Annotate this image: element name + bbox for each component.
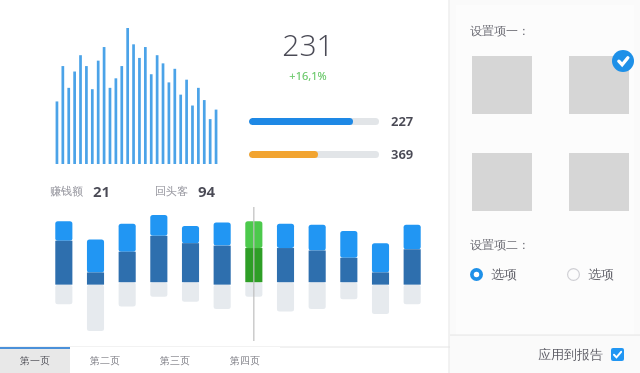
- button[interactable]: 选项: [567, 266, 614, 282]
- staticText: 回头客: [155, 184, 188, 198]
- button[interactable]: 选项: [470, 266, 517, 282]
- staticText: 第三页: [160, 354, 190, 367]
- staticText: 231: [262, 24, 354, 65]
- staticText: 第一页: [20, 354, 50, 367]
- button[interactable]: 第二页: [70, 347, 140, 373]
- staticText: 第二页: [90, 354, 120, 367]
- staticText: 选项: [588, 266, 614, 282]
- button[interactable]: 第一页: [0, 347, 70, 373]
- button[interactable]: 第三页: [140, 347, 210, 373]
- staticText: 选项: [491, 266, 517, 282]
- button[interactable]: 已选模板: [569, 56, 629, 114]
- staticText: 应用到报告: [538, 346, 603, 362]
- button[interactable]: 应用到报告: [538, 346, 624, 362]
- staticText: 21: [93, 181, 111, 201]
- staticText: 设置项一：: [470, 23, 530, 38]
- staticText: 369: [391, 145, 414, 163]
- staticText: 227: [391, 112, 414, 130]
- staticText: +16,1%: [262, 68, 354, 83]
- staticText: 设置项二：: [470, 237, 530, 252]
- other: 已选中: [612, 50, 634, 72]
- button[interactable]: 第四页: [210, 347, 280, 373]
- staticText: 赚钱额: [50, 184, 83, 198]
- staticText: 第四页: [230, 354, 260, 367]
- staticText: 94: [198, 181, 216, 201]
